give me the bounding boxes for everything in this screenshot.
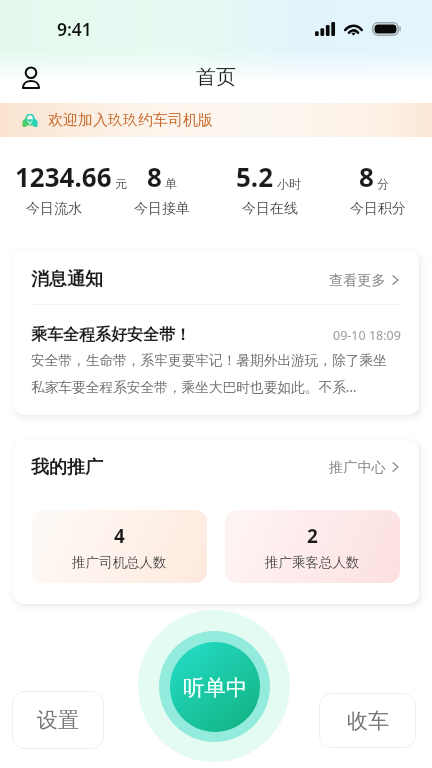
staticText: 2: [307, 523, 318, 549]
button[interactable]: 收车: [319, 693, 416, 748]
button[interactable]: 欢迎加入玖玖约车司机版: [0, 103, 432, 137]
staticText: 今日积分: [350, 200, 406, 218]
staticText: 推广乘客总人数: [265, 554, 360, 571]
staticText: 09-10 18:09: [333, 327, 401, 344]
button[interactable]: 2: [225, 510, 400, 583]
staticText: 分: [377, 176, 389, 191]
staticText: 查看更多: [329, 271, 386, 289]
staticText: 小时: [277, 176, 301, 191]
staticText: 今日流水: [26, 200, 82, 218]
button[interactable]: 4: [32, 510, 207, 583]
staticText: 8: [147, 159, 162, 194]
staticText: 8: [359, 159, 374, 194]
button[interactable]: 我的推广: [13, 440, 419, 510]
staticText: 元: [115, 176, 123, 191]
staticText: 听单中: [183, 674, 248, 701]
staticText: 推广中心: [329, 458, 386, 476]
button[interactable]: 消息通知: [13, 249, 419, 304]
staticText: 1234.66: [15, 159, 112, 194]
staticText: 欢迎加入玖玖约车司机版: [48, 111, 213, 130]
staticText: 设置: [37, 707, 79, 733]
staticText: 单: [165, 176, 177, 191]
staticText: 今日接单: [134, 200, 190, 218]
staticText: 5.2: [236, 159, 274, 194]
staticText: 消息通知: [31, 268, 103, 291]
staticText: 9:41: [57, 17, 92, 41]
button[interactable]: 听单中: [138, 610, 290, 762]
staticText: 乘车全程系好安全带！: [31, 325, 191, 345]
staticText: 今日在线: [242, 200, 298, 218]
staticText: 收车: [347, 708, 389, 734]
staticText: 我的推广: [31, 456, 103, 479]
button[interactable]: 乘车全程系好安全带！: [13, 305, 419, 415]
staticText: 推广司机总人数: [72, 554, 167, 571]
button[interactable]: Account: [10, 57, 52, 99]
button[interactable]: 设置: [12, 691, 104, 749]
staticText: 首页: [196, 65, 236, 90]
staticText: 安全带，生命带，系牢更要牢记！暑期外出游玩，除了乘坐私家车要全程系安全带，乘坐大…: [31, 352, 395, 396]
staticText: 4: [114, 523, 125, 549]
